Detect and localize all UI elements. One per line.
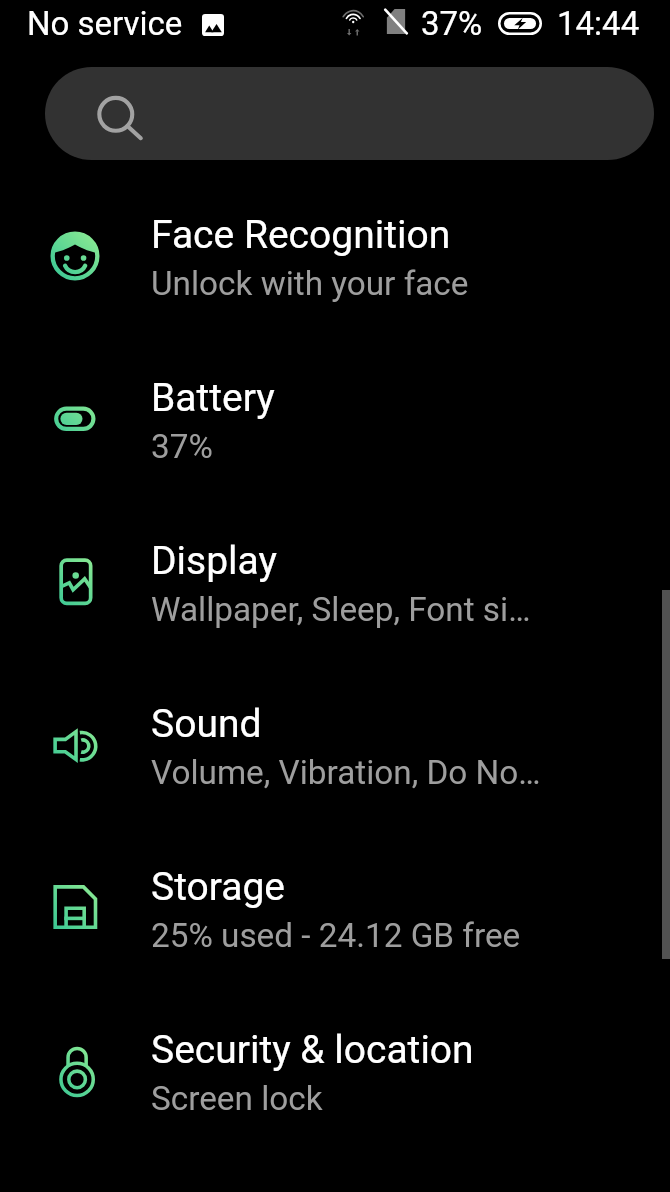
button[interactable]: Battery (0, 337, 670, 500)
staticText: Screen lock (151, 1079, 323, 1118)
button[interactable]: Display (0, 500, 670, 663)
other: Wi-Fi signal (341, 6, 367, 38)
staticText: Storage (151, 864, 286, 910)
staticText: 37% (151, 427, 213, 466)
staticText: Sound (151, 701, 262, 747)
staticText: No service (27, 4, 183, 43)
other: Screenshot (202, 14, 224, 36)
staticText: Unlock with your face (151, 264, 469, 303)
other: Battery charging (498, 12, 542, 35)
staticText: Face Recognition (151, 212, 451, 258)
staticText: Wallpaper, Sleep, Font si… (151, 590, 531, 629)
button[interactable]: Search (45, 67, 654, 160)
staticText: Security & location (151, 1027, 474, 1073)
staticText: Display (151, 538, 277, 584)
staticText: 14:44 (557, 4, 640, 43)
button[interactable]: Sound (0, 663, 670, 826)
button[interactable]: Face Recognition (0, 174, 670, 337)
staticText: 37% (421, 4, 483, 43)
other: Search (94, 88, 146, 140)
button[interactable]: Storage (0, 826, 670, 989)
other: No SIM card (384, 8, 408, 35)
button[interactable]: Security & location (0, 989, 670, 1152)
staticText: Volume, Vibration, Do No… (151, 753, 541, 792)
staticText: 25% used - 24.12 GB free (151, 916, 521, 955)
staticText: Battery (151, 375, 275, 421)
